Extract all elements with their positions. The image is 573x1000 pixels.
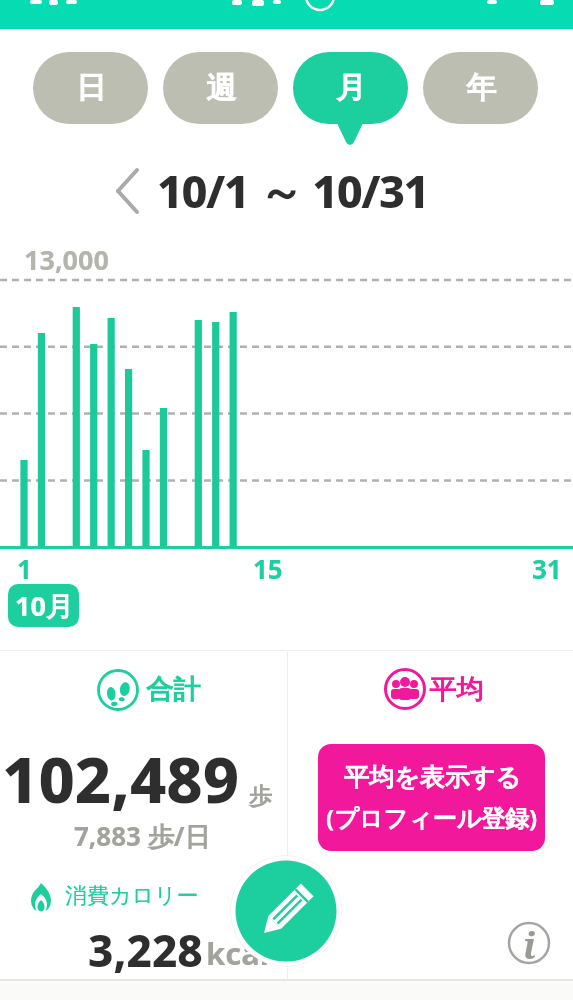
button[interactable]: 10月 [8, 584, 79, 627]
staticText: i [523, 921, 536, 965]
staticText: 日 [76, 69, 106, 107]
button[interactable] [0, 0, 573, 29]
staticText: 10月 [15, 587, 73, 624]
staticText: 合計 [146, 673, 200, 707]
staticText: 15 [253, 551, 283, 581]
staticText: 13,000 [24, 241, 109, 278]
staticText: 102,489 [2, 736, 240, 822]
button[interactable]: 月 [293, 52, 408, 124]
button[interactable]: 平均 [428, 673, 484, 707]
staticText: 平均を表示する [344, 762, 521, 793]
button[interactable]: 合計 [144, 673, 202, 707]
button[interactable]: 平均を表示する [318, 744, 545, 851]
staticText: kcal [206, 932, 270, 974]
staticText: 年 [466, 69, 496, 107]
staticText: 31 [532, 551, 562, 581]
staticText: 月 [336, 69, 366, 107]
button[interactable]: 週 [163, 52, 278, 124]
staticText: (プロフィール登録) [326, 801, 538, 834]
button[interactable]: 消費カロリー [65, 882, 199, 910]
staticText: 3,228 [88, 920, 203, 980]
staticText: 7,883 歩/日 [74, 818, 211, 852]
button[interactable]: i [507, 921, 551, 965]
button[interactable]: 日 [33, 52, 148, 124]
staticText: 1 [17, 551, 32, 581]
staticText: 週 [206, 69, 236, 107]
button[interactable]: 年 [423, 52, 538, 124]
staticText: 10/1 ～ 10/31 [157, 160, 428, 221]
button[interactable]: 10/1 ～ 10/31 [150, 158, 435, 222]
staticText: 平均 [429, 673, 483, 707]
staticText: 歩 [249, 782, 272, 811]
button[interactable] [230, 855, 342, 967]
